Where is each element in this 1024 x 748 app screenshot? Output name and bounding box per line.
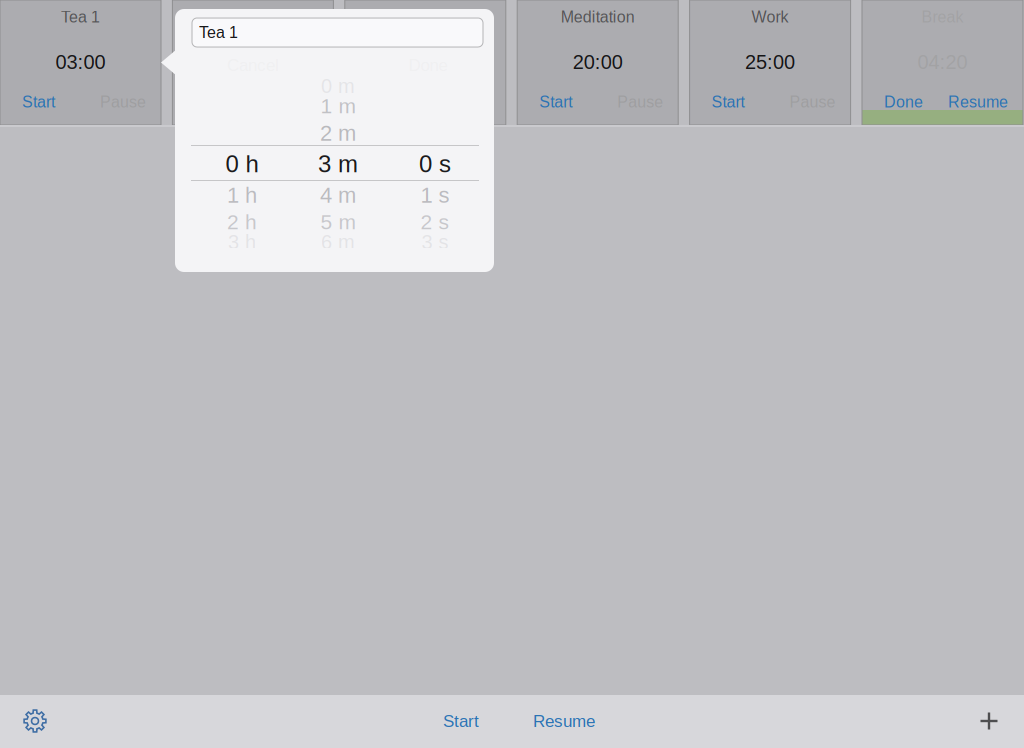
staticText: 0 s	[419, 151, 451, 177]
staticText: Pause	[790, 93, 836, 111]
staticText: 6 m	[321, 231, 355, 253]
staticText: 0 h	[225, 151, 258, 177]
button[interactable]: Add timer	[963, 695, 1015, 747]
staticText: Start	[443, 711, 479, 730]
staticText: Resume	[948, 93, 1008, 111]
button[interactable]: Eggs	[345, 0, 506, 125]
button[interactable]: Tea 1	[0, 0, 161, 125]
staticText: 3 m	[318, 151, 358, 177]
staticText: 04:20	[917, 51, 967, 73]
staticText: Break	[921, 8, 963, 26]
button[interactable]: Start	[431, 696, 491, 745]
staticText: 2 h	[227, 210, 257, 234]
staticText: Tea 1	[199, 24, 238, 41]
staticText: 03:00	[55, 51, 105, 73]
staticText: 1 h	[227, 183, 257, 207]
staticText: 3 h	[228, 231, 256, 253]
staticText: Resume	[533, 711, 595, 730]
staticText: Tea 2	[233, 8, 272, 26]
staticText: 1 s	[420, 183, 449, 207]
staticText: 0 m	[321, 75, 355, 97]
staticText: 5 m	[320, 210, 355, 234]
staticText: 1 m	[320, 94, 355, 118]
staticText: Done	[884, 93, 923, 111]
button[interactable]: Work	[690, 0, 851, 125]
button[interactable]: Tea 2	[172, 0, 333, 125]
staticText: Start	[712, 93, 745, 111]
staticText: Tea 1	[61, 8, 100, 26]
staticText: Eggs	[407, 8, 444, 26]
staticText: Start	[22, 93, 55, 111]
button[interactable]: Break	[862, 0, 1023, 125]
staticText: 20:00	[573, 51, 623, 73]
staticText: 3 s	[421, 231, 448, 253]
staticText: 2 s	[420, 210, 449, 234]
staticText: 4 m	[320, 183, 356, 207]
button[interactable]: Resume	[521, 696, 607, 745]
staticText: 25:00	[745, 51, 795, 73]
button[interactable]: Meditation	[517, 0, 678, 125]
staticText: 2 m	[320, 121, 356, 145]
staticText: Pause	[100, 93, 146, 111]
staticText: Meditation	[561, 8, 635, 26]
button[interactable]: Settings	[9, 695, 61, 747]
staticText: Pause	[617, 93, 663, 111]
staticText: Work	[752, 8, 789, 26]
staticText: Start	[539, 93, 572, 111]
